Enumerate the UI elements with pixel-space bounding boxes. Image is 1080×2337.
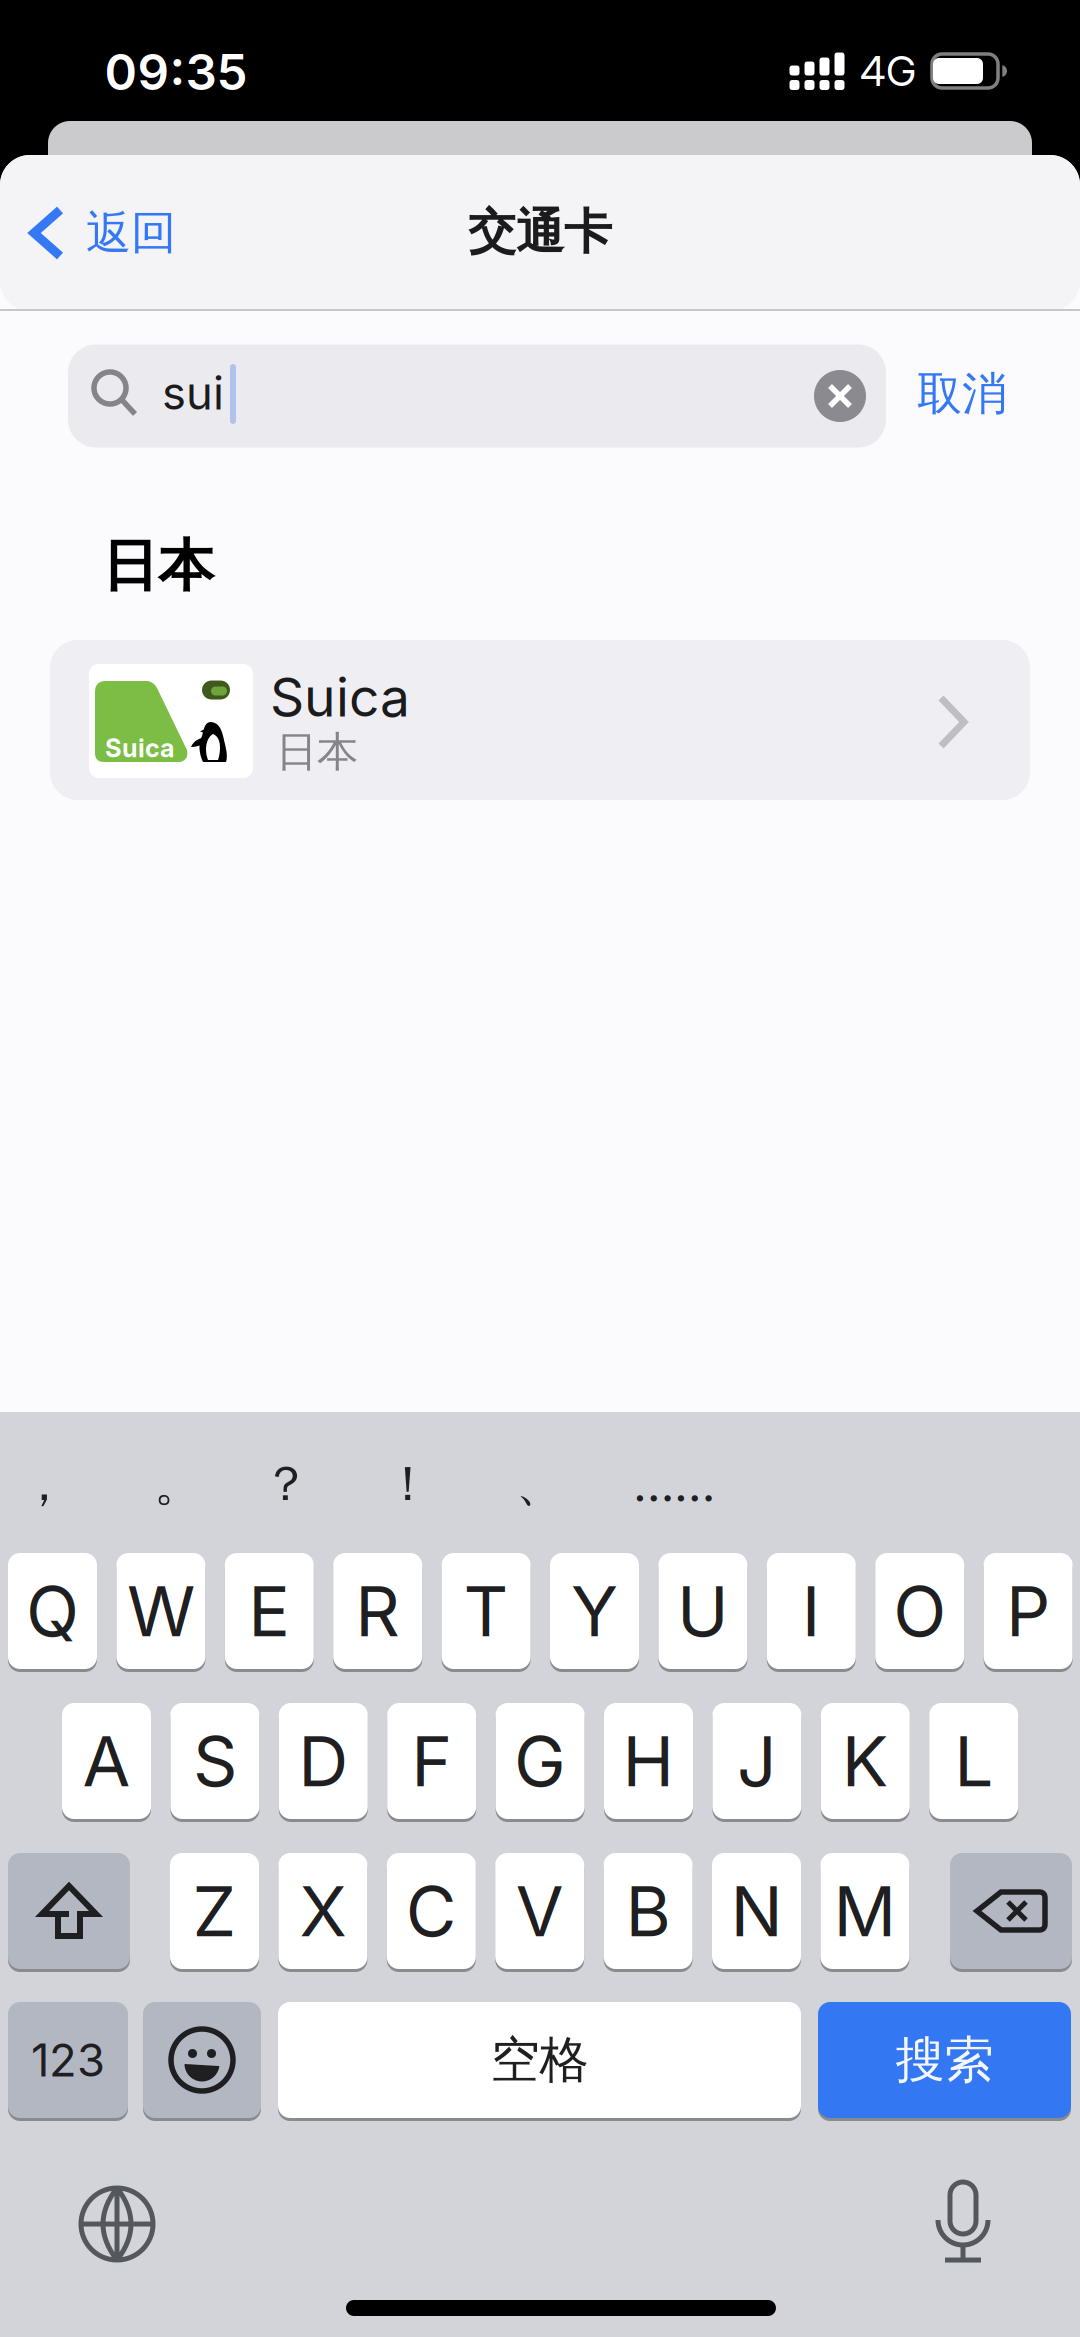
button[interactable]: 123 bbox=[8, 2000, 128, 2120]
button[interactable]: 、 bbox=[516, 1454, 564, 1513]
button[interactable]: 返回 bbox=[30, 205, 176, 261]
staticText: Z bbox=[192, 1870, 236, 1952]
button[interactable]: M bbox=[820, 1851, 909, 1971]
staticText: J bbox=[737, 1720, 777, 1802]
staticText: N bbox=[730, 1870, 782, 1952]
staticText: O bbox=[893, 1570, 946, 1652]
button[interactable]: 。 bbox=[154, 1454, 202, 1513]
staticText: 、 bbox=[516, 1454, 564, 1513]
staticText: A bbox=[82, 1720, 130, 1802]
button[interactable]: H bbox=[604, 1701, 693, 1821]
staticText: ， bbox=[20, 1454, 68, 1513]
staticText: L bbox=[954, 1720, 993, 1802]
button[interactable]: 搜索 bbox=[818, 2000, 1071, 2120]
button[interactable]: L bbox=[929, 1701, 1018, 1821]
staticText: C bbox=[406, 1870, 457, 1952]
staticText: 交通卡 bbox=[468, 202, 612, 261]
staticText: ？ bbox=[262, 1454, 310, 1513]
button[interactable]: Q bbox=[8, 1551, 97, 1671]
staticText: …… bbox=[633, 1456, 715, 1512]
staticText: 空格 bbox=[490, 2030, 588, 2090]
staticText: 123 bbox=[31, 2033, 105, 2087]
button[interactable]: ？ bbox=[262, 1454, 310, 1513]
staticText: Suica bbox=[105, 733, 175, 763]
button[interactable]: W bbox=[116, 1551, 205, 1671]
staticText: W bbox=[127, 1570, 195, 1652]
staticText: F bbox=[411, 1720, 452, 1802]
staticText: H bbox=[622, 1720, 674, 1802]
button[interactable]: I bbox=[767, 1551, 856, 1671]
button[interactable]: T bbox=[442, 1551, 531, 1671]
button[interactable]: 下一个输入法 bbox=[79, 2186, 155, 2262]
staticText: Q bbox=[26, 1570, 79, 1652]
staticText: 搜索 bbox=[895, 2030, 993, 2090]
staticText: V bbox=[516, 1870, 564, 1952]
button[interactable]: U bbox=[658, 1551, 747, 1671]
staticText: M bbox=[833, 1870, 896, 1952]
staticText: B bbox=[626, 1870, 671, 1952]
button[interactable]: ！ bbox=[384, 1454, 432, 1513]
button[interactable]: P bbox=[984, 1551, 1073, 1671]
button[interactable]: S bbox=[170, 1701, 259, 1821]
staticText: sui bbox=[162, 366, 224, 420]
button[interactable]: D bbox=[279, 1701, 368, 1821]
staticText: ！ bbox=[384, 1454, 432, 1513]
staticText: 返回 bbox=[86, 205, 176, 261]
button[interactable]: B bbox=[604, 1851, 693, 1971]
button[interactable]: Y bbox=[550, 1551, 639, 1671]
button[interactable]: E bbox=[225, 1551, 314, 1671]
button[interactable]: R bbox=[333, 1551, 422, 1671]
button[interactable]: Suica bbox=[50, 640, 1030, 800]
button[interactable]: 清除 bbox=[814, 370, 866, 422]
staticText: R bbox=[355, 1570, 400, 1652]
staticText: D bbox=[298, 1720, 348, 1802]
button[interactable]: 取消 bbox=[917, 366, 1007, 422]
staticText: P bbox=[1006, 1570, 1050, 1652]
button[interactable]: ， bbox=[20, 1454, 68, 1513]
button[interactable]: K bbox=[821, 1701, 910, 1821]
staticText: T bbox=[464, 1570, 509, 1652]
staticText: S bbox=[193, 1720, 237, 1802]
staticText: U bbox=[677, 1570, 729, 1652]
staticText: K bbox=[842, 1720, 889, 1802]
button[interactable]: V bbox=[495, 1851, 584, 1971]
button[interactable]: Shift bbox=[8, 1851, 130, 1971]
staticText: E bbox=[248, 1570, 290, 1652]
button[interactable]: A bbox=[62, 1701, 151, 1821]
button[interactable]: …… bbox=[633, 1456, 715, 1512]
button[interactable]: 删除 bbox=[950, 1851, 1072, 1971]
button[interactable]: N bbox=[712, 1851, 801, 1971]
button[interactable]: J bbox=[712, 1701, 801, 1821]
staticText: 09:35 bbox=[104, 43, 247, 101]
button[interactable]: F bbox=[387, 1701, 476, 1821]
staticText: I bbox=[802, 1570, 821, 1652]
staticText: 4G bbox=[860, 47, 916, 95]
button[interactable]: 空格 bbox=[278, 2000, 801, 2120]
button[interactable]: G bbox=[496, 1701, 585, 1821]
button[interactable]: O bbox=[875, 1551, 964, 1671]
button[interactable]: C bbox=[387, 1851, 476, 1971]
staticText: 取消 bbox=[917, 366, 1007, 422]
staticText: Y bbox=[571, 1570, 618, 1652]
button[interactable]: 听写 bbox=[923, 2180, 1003, 2264]
button[interactable]: X bbox=[278, 1851, 367, 1971]
staticText: Suica bbox=[270, 665, 410, 728]
staticText: G bbox=[514, 1720, 566, 1802]
button[interactable]: 表情 bbox=[143, 2000, 261, 2120]
staticText: 日本 bbox=[102, 532, 214, 600]
staticText: X bbox=[299, 1870, 346, 1952]
button[interactable]: Z bbox=[170, 1851, 259, 1971]
staticText: 。 bbox=[154, 1454, 202, 1513]
staticText: 日本 bbox=[276, 727, 358, 777]
